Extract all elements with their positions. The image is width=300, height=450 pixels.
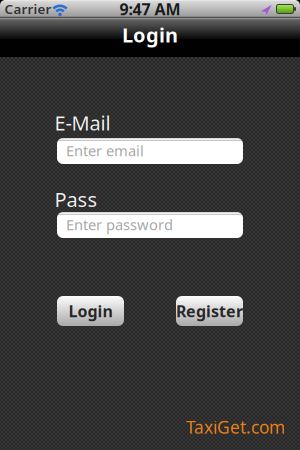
button[interactable]: TaxiGet.com (186, 415, 285, 438)
staticText: E-Mail (54, 109, 110, 136)
staticText: Login (68, 300, 112, 322)
staticText: Carrier (4, 0, 51, 18)
button[interactable]: Register (176, 296, 243, 326)
button[interactable]: Enter email (57, 138, 243, 164)
staticText: Enter password (66, 215, 173, 234)
button[interactable]: Enter password (57, 212, 243, 238)
staticText: Login (122, 21, 178, 48)
button[interactable]: Login (57, 296, 124, 326)
staticText: Pass (54, 186, 97, 213)
staticText: TaxiGet.com (186, 415, 285, 438)
staticText: 9:47 AM (119, 0, 180, 20)
staticText: Register (176, 300, 243, 322)
staticText: Enter email (66, 141, 144, 160)
